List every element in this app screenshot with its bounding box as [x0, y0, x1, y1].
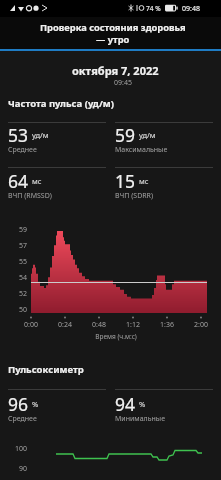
staticText: 0:00	[21, 320, 41, 330]
staticText: 90	[7, 464, 27, 474]
staticText: 94	[115, 392, 136, 416]
staticText: 0:48	[89, 320, 109, 330]
staticText: 53	[8, 123, 29, 147]
staticText: 15	[115, 169, 136, 193]
button[interactable]: 53	[8, 123, 106, 161]
button[interactable]: 96	[8, 392, 106, 430]
staticText: 50	[7, 305, 27, 315]
staticText: Пульсоксиметр	[8, 363, 84, 376]
button[interactable]	[30, 62, 221, 88]
staticText: Минимальные	[115, 414, 166, 424]
staticText: уд/м	[139, 130, 156, 140]
staticText: %	[139, 399, 146, 409]
staticText: ВЧП (SDRR)	[115, 191, 154, 201]
staticText: Среднее	[8, 414, 37, 424]
staticText: мс	[139, 176, 149, 186]
staticText: октября 7, 2022	[72, 63, 159, 78]
staticText: ВЧП (RMSSD)	[8, 191, 52, 201]
button[interactable]: 94	[115, 392, 213, 430]
staticText: 0:24	[55, 320, 75, 330]
button[interactable]: 64	[8, 169, 106, 207]
staticText: 2:00	[191, 320, 211, 330]
staticText: 64	[8, 169, 29, 193]
staticText: 09:48	[182, 4, 200, 14]
staticText: 59	[115, 123, 136, 147]
staticText: 52	[7, 289, 27, 299]
staticText: 100	[7, 444, 27, 454]
staticText: 55	[7, 257, 27, 267]
staticText: 1:36	[157, 320, 177, 330]
staticText: Максимальные	[115, 145, 168, 155]
staticText: Среднее	[8, 145, 37, 155]
staticText: — утро	[96, 33, 130, 46]
staticText: 09:45	[114, 78, 132, 88]
staticText: 57	[7, 241, 27, 251]
staticText: 1:12	[123, 320, 143, 330]
staticText: 54	[7, 273, 27, 283]
staticText: 96	[8, 392, 29, 416]
staticText: Частота пульса (уд/м)	[8, 97, 115, 110]
staticText: 59	[7, 225, 27, 235]
staticText: Время (ч.м:с)	[86, 332, 146, 341]
staticText: Проверка состояния здоровья	[40, 21, 186, 34]
staticText: уд/м	[32, 130, 49, 140]
button[interactable]: 15	[115, 169, 213, 207]
staticText: %	[32, 399, 39, 409]
staticText: мс	[32, 176, 42, 186]
staticText: 74 %	[146, 4, 161, 13]
button[interactable]: 59	[115, 123, 213, 161]
